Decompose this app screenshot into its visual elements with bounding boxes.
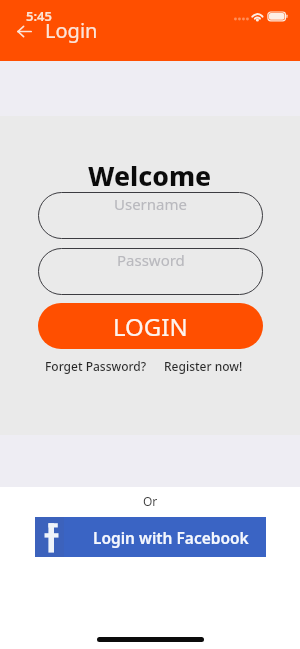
staticText: 5:45 <box>26 7 52 25</box>
staticText: Login <box>45 17 98 44</box>
button[interactable]: Username <box>38 192 263 239</box>
staticText: Or <box>143 493 158 509</box>
staticText: Register now! <box>164 358 243 374</box>
button[interactable]: LOGIN <box>38 303 263 349</box>
button[interactable]: Forget Password? <box>45 358 147 374</box>
staticText: LOGIN <box>113 310 188 343</box>
staticText: Password <box>117 250 185 270</box>
button[interactable]: Back <box>6 13 42 49</box>
button[interactable]: Login with Facebook <box>35 517 266 557</box>
staticText: Login with Facebook <box>93 527 249 548</box>
staticText: Welcome <box>88 158 212 194</box>
staticText: Username <box>114 194 187 214</box>
button[interactable]: Password <box>38 248 263 295</box>
staticText: Forget Password? <box>45 358 147 374</box>
button[interactable]: Register now! <box>164 358 243 374</box>
